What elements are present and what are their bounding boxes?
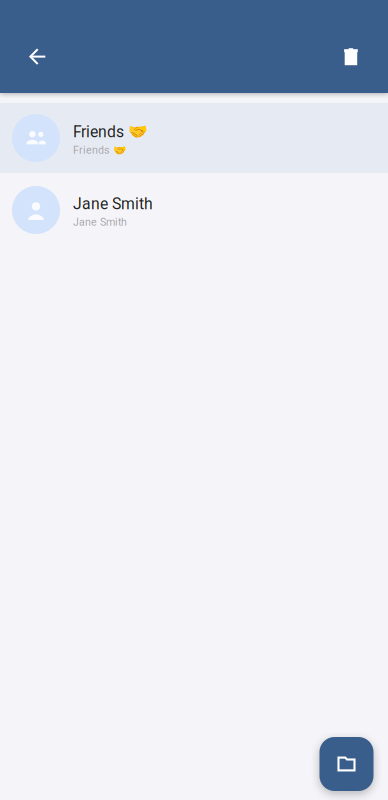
staticText: Friends 🤝 <box>73 144 126 156</box>
staticText: Jane Smith <box>73 194 153 213</box>
staticText: Jane Smith <box>73 216 127 228</box>
staticText: Friends 🤝 <box>73 122 148 141</box>
button[interactable]: Friends 🤝 <box>0 103 388 173</box>
button[interactable]: Open folder <box>319 737 373 791</box>
button[interactable]: Delete <box>327 32 375 80</box>
button[interactable]: Back <box>13 32 61 80</box>
button[interactable]: Jane Smith <box>0 175 388 245</box>
